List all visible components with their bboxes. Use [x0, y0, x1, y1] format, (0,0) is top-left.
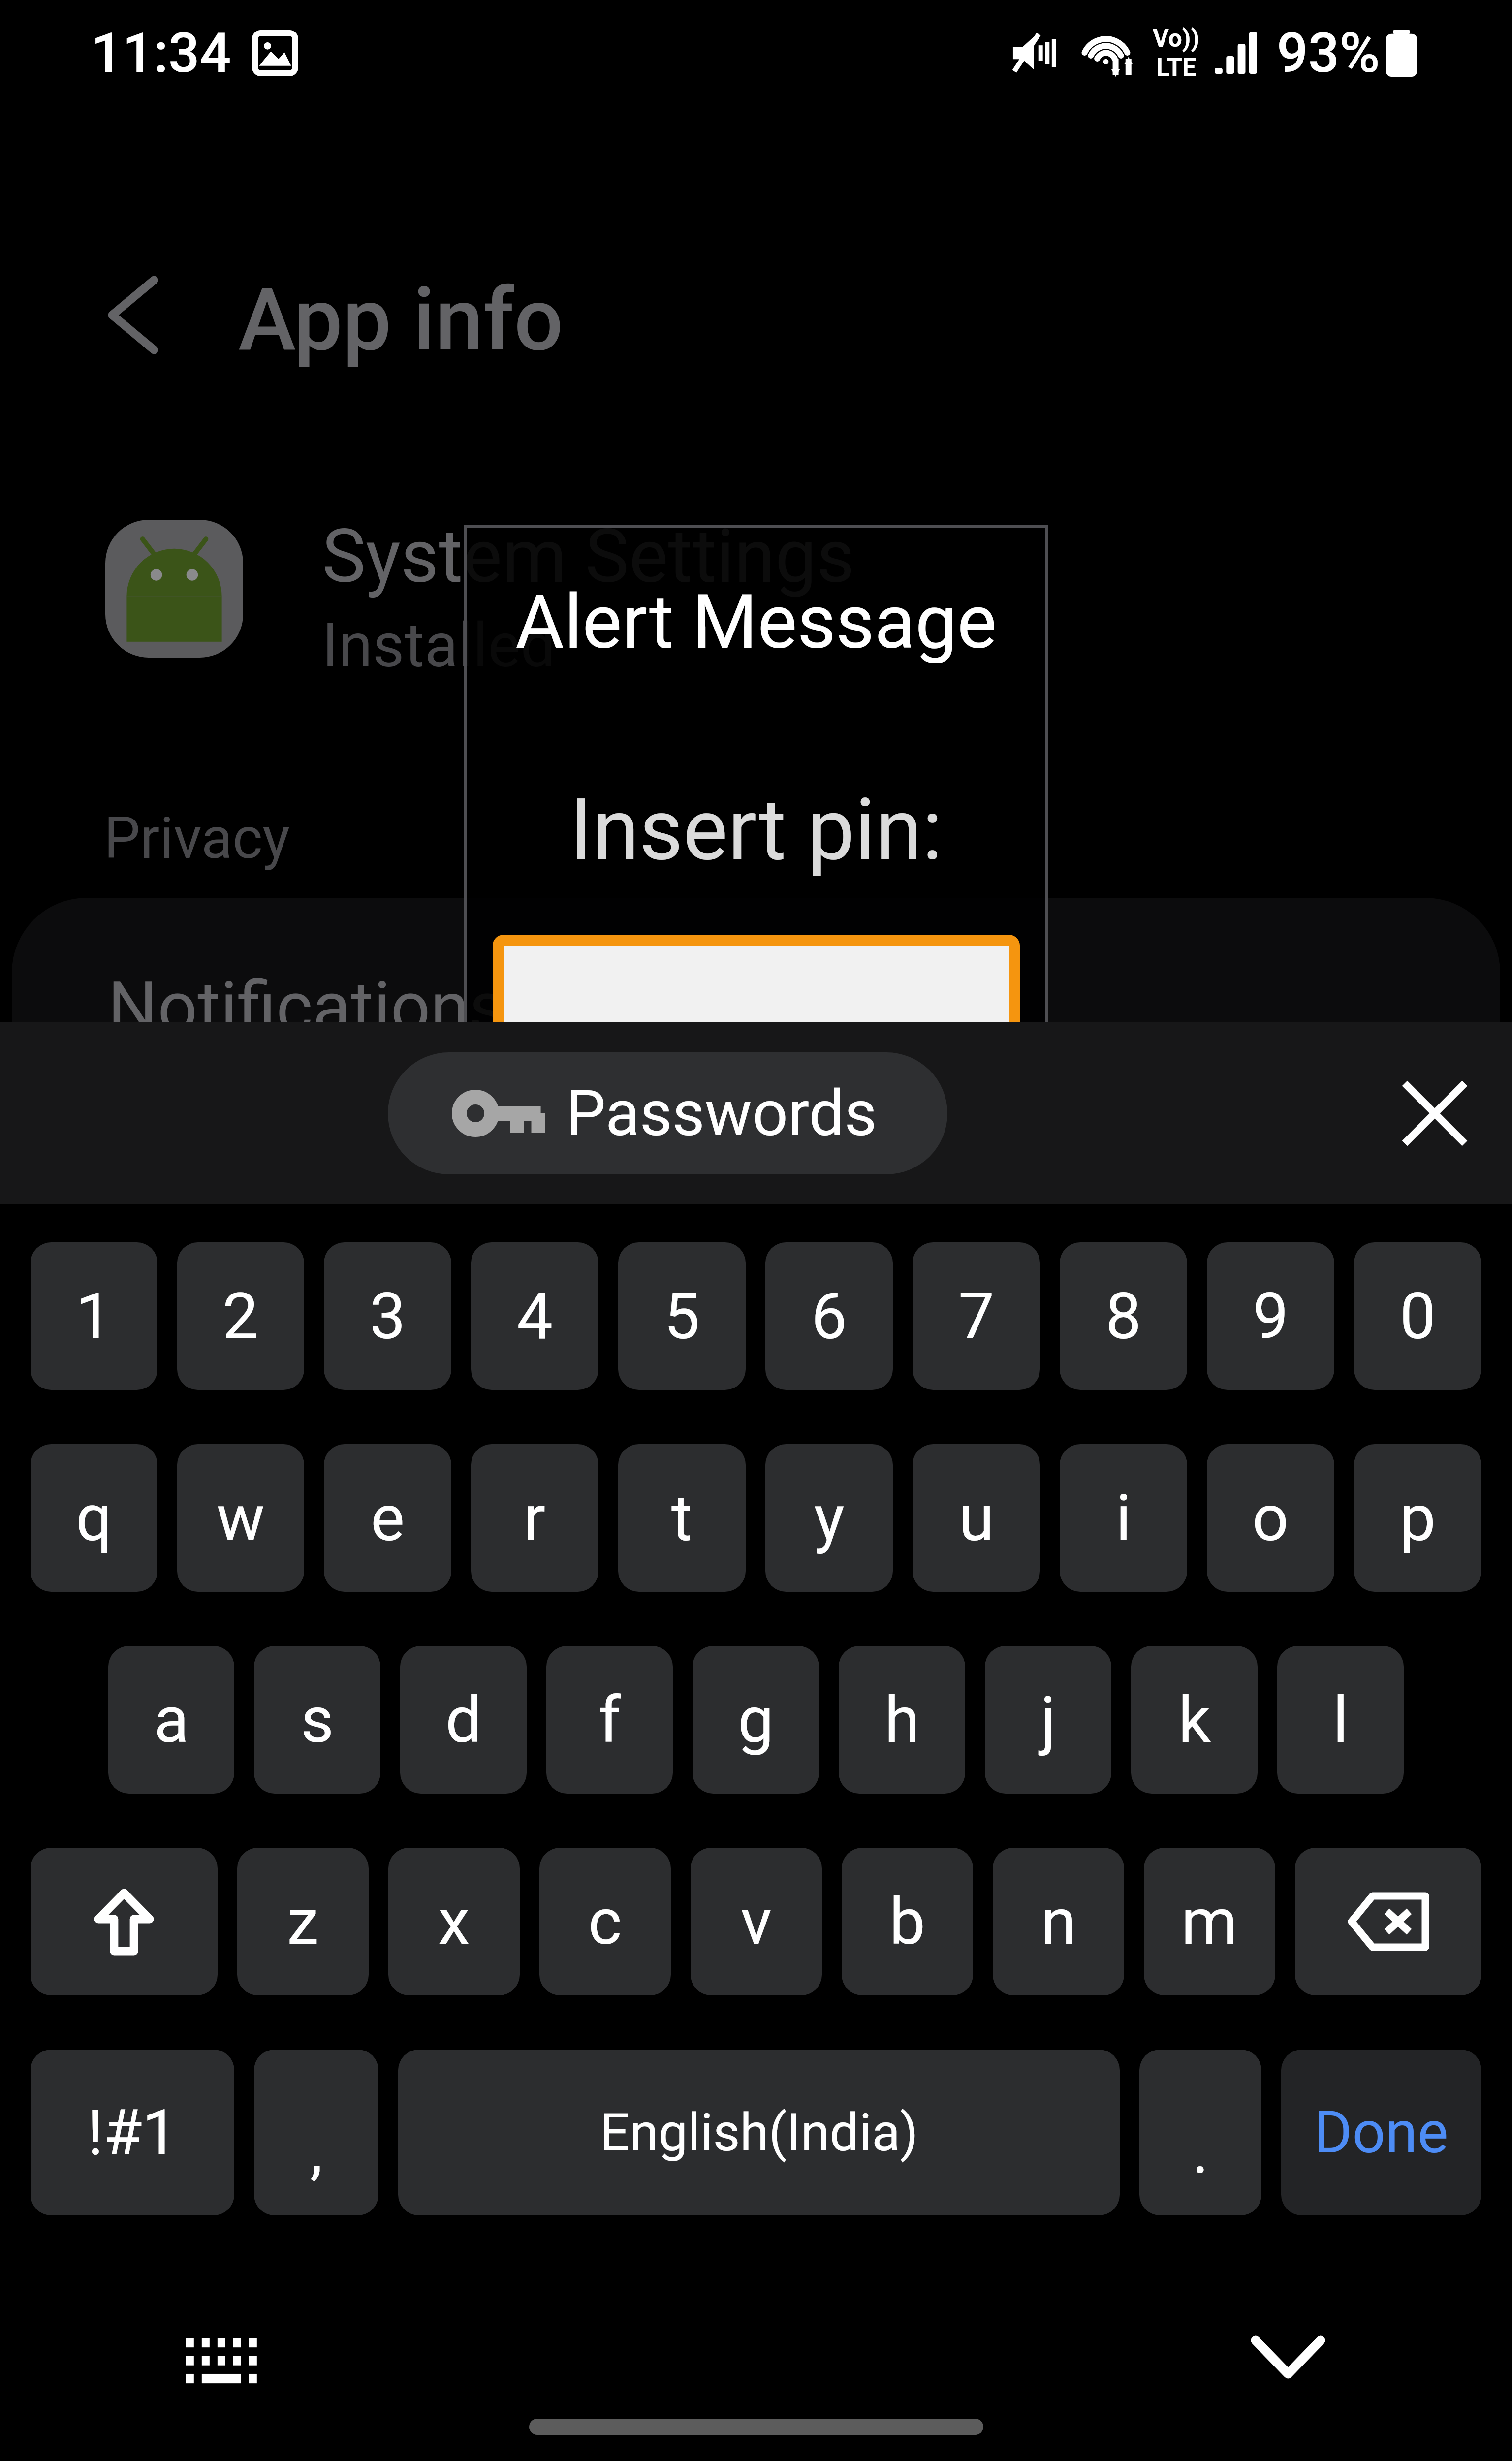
staticText: p — [1400, 1481, 1436, 1555]
button[interactable]: . — [1139, 2050, 1261, 2215]
button[interactable]: c — [539, 1848, 671, 1995]
staticText: f — [598, 1682, 621, 1757]
button[interactable]: p — [1354, 1444, 1481, 1592]
button[interactable]: 1 — [31, 1242, 157, 1390]
staticText: k — [1178, 1682, 1211, 1757]
staticText: n — [1041, 1884, 1076, 1959]
staticText: 2 — [222, 1279, 259, 1354]
button[interactable]: 3 — [324, 1242, 451, 1390]
staticText: 5 — [664, 1279, 700, 1354]
button[interactable]: i — [1060, 1444, 1187, 1592]
button[interactable]: l — [1277, 1646, 1404, 1794]
button[interactable]: 0 — [1354, 1242, 1481, 1390]
staticText: w — [217, 1481, 265, 1555]
staticText: e — [371, 1481, 405, 1555]
button[interactable]: 5 — [618, 1242, 746, 1390]
button[interactable]: 4 — [471, 1242, 598, 1390]
staticText: s — [301, 1682, 334, 1757]
staticText: Calendar, Call logs, Camera, Contacts, F… — [108, 1356, 1193, 1559]
button[interactable]: Backspace — [1295, 1848, 1481, 1995]
staticText: t — [671, 1481, 693, 1555]
staticText: Notifications — [108, 967, 505, 1048]
staticText: Passwords — [566, 1076, 877, 1150]
button[interactable]: q — [31, 1444, 157, 1592]
staticText: Open — [201, 1732, 330, 1796]
button[interactable]: n — [993, 1848, 1124, 1995]
button[interactable]: o — [1207, 1444, 1334, 1592]
staticText: i — [1116, 1481, 1132, 1555]
button[interactable]: h — [839, 1646, 965, 1794]
button[interactable]: 7 — [913, 1242, 1040, 1390]
button[interactable]: Permissions — [12, 1190, 1500, 1585]
staticText: Installed — [322, 609, 555, 681]
button[interactable]: 6 — [765, 1242, 893, 1390]
staticText: 9 — [1253, 1279, 1289, 1354]
button[interactable]: Done — [1281, 2050, 1481, 2215]
button[interactable]: e — [324, 1444, 451, 1592]
button[interactable]: g — [693, 1646, 819, 1794]
button[interactable]: m — [1144, 1848, 1275, 1995]
button[interactable]: Shift — [31, 1848, 218, 1995]
staticText: 8 — [1105, 1279, 1142, 1354]
button[interactable]: Open — [21, 1609, 511, 1816]
staticText: q — [76, 1481, 112, 1555]
button[interactable]: z — [237, 1848, 369, 1995]
staticText: m — [1181, 1884, 1238, 1959]
staticText: 7 — [958, 1279, 995, 1354]
button[interactable]: OK — [507, 1178, 1005, 1351]
staticText: u — [959, 1481, 994, 1555]
button[interactable]: f — [546, 1646, 673, 1794]
button[interactable]: u — [913, 1444, 1040, 1592]
button[interactable]: Close suggestions — [1388, 1067, 1481, 1160]
button[interactable]: j — [985, 1646, 1111, 1794]
button[interactable]: v — [691, 1848, 822, 1995]
button[interactable]: English(India) — [398, 2050, 1120, 2215]
staticText: j — [1040, 1682, 1056, 1757]
button[interactable]: Passwords — [388, 1052, 947, 1174]
button[interactable] — [504, 946, 1009, 1101]
button[interactable]: Change keyboard — [184, 2338, 263, 2385]
button[interactable]: !#1 — [31, 2050, 234, 2215]
button[interactable]: Force stop — [1001, 1609, 1491, 1816]
button[interactable]: 8 — [1060, 1242, 1187, 1390]
button[interactable]: d — [400, 1646, 527, 1794]
staticText: v — [741, 1884, 772, 1959]
staticText: , — [310, 2114, 323, 2188]
staticText: Done — [1314, 2099, 1449, 2167]
button[interactable]: 9 — [1207, 1242, 1334, 1390]
staticText: d — [445, 1682, 482, 1757]
staticText: Force stop — [1116, 1732, 1376, 1796]
button[interactable]: a — [108, 1646, 234, 1794]
staticText: r — [524, 1481, 546, 1555]
button[interactable]: t — [618, 1444, 746, 1592]
button[interactable]: 2 — [177, 1242, 304, 1390]
staticText: LTE — [1156, 53, 1197, 82]
staticText: z — [287, 1884, 319, 1959]
staticText: Privacy — [104, 804, 290, 872]
button[interactable]: x — [388, 1848, 520, 1995]
staticText: !#1 — [87, 2096, 178, 2170]
staticText: 1 — [76, 1279, 112, 1354]
button[interactable]: Uninstall — [511, 1609, 1001, 1816]
staticText: 4 — [517, 1279, 553, 1354]
staticText: 93% — [1277, 21, 1380, 85]
staticText: c — [588, 1884, 622, 1959]
staticText: Alert Message — [515, 578, 997, 666]
staticText: b — [889, 1884, 925, 1959]
staticText: a — [154, 1682, 189, 1757]
button[interactable]: w — [177, 1444, 304, 1592]
button[interactable]: k — [1131, 1646, 1258, 1794]
button[interactable]: , — [254, 2050, 378, 2215]
staticText: l — [1333, 1682, 1349, 1757]
button[interactable]: Hide keyboard — [1251, 2336, 1325, 2378]
staticText: Vo)) — [1153, 24, 1200, 53]
button[interactable]: Notifications — [12, 898, 1500, 1188]
button[interactable]: b — [842, 1848, 973, 1995]
button[interactable]: y — [765, 1444, 893, 1592]
button[interactable]: Back — [79, 261, 187, 369]
button[interactable]: r — [471, 1444, 598, 1592]
staticText: x — [438, 1884, 470, 1959]
staticText: Uninstall — [649, 1732, 863, 1796]
button[interactable]: s — [254, 1646, 380, 1794]
